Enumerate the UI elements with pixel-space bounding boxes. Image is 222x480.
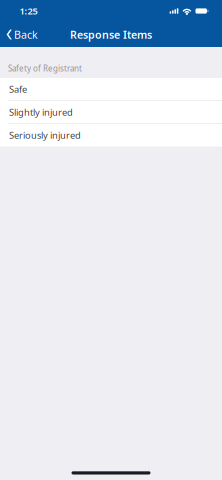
- staticText: Slightly injured: [9, 106, 73, 118]
- staticText: Seriously injured: [9, 129, 81, 141]
- button[interactable]: Seriously injured: [0, 124, 222, 147]
- button[interactable]: Slightly injured: [0, 101, 222, 124]
- staticText: Safety of Registrant: [8, 63, 82, 74]
- button[interactable]: Back: [0, 22, 46, 47]
- button[interactable]: Safe: [0, 78, 222, 101]
- staticText: Safe: [9, 83, 27, 95]
- staticText: Back: [14, 27, 38, 42]
- staticText: 1:25: [19, 5, 37, 17]
- staticText: Response Items: [70, 27, 152, 42]
